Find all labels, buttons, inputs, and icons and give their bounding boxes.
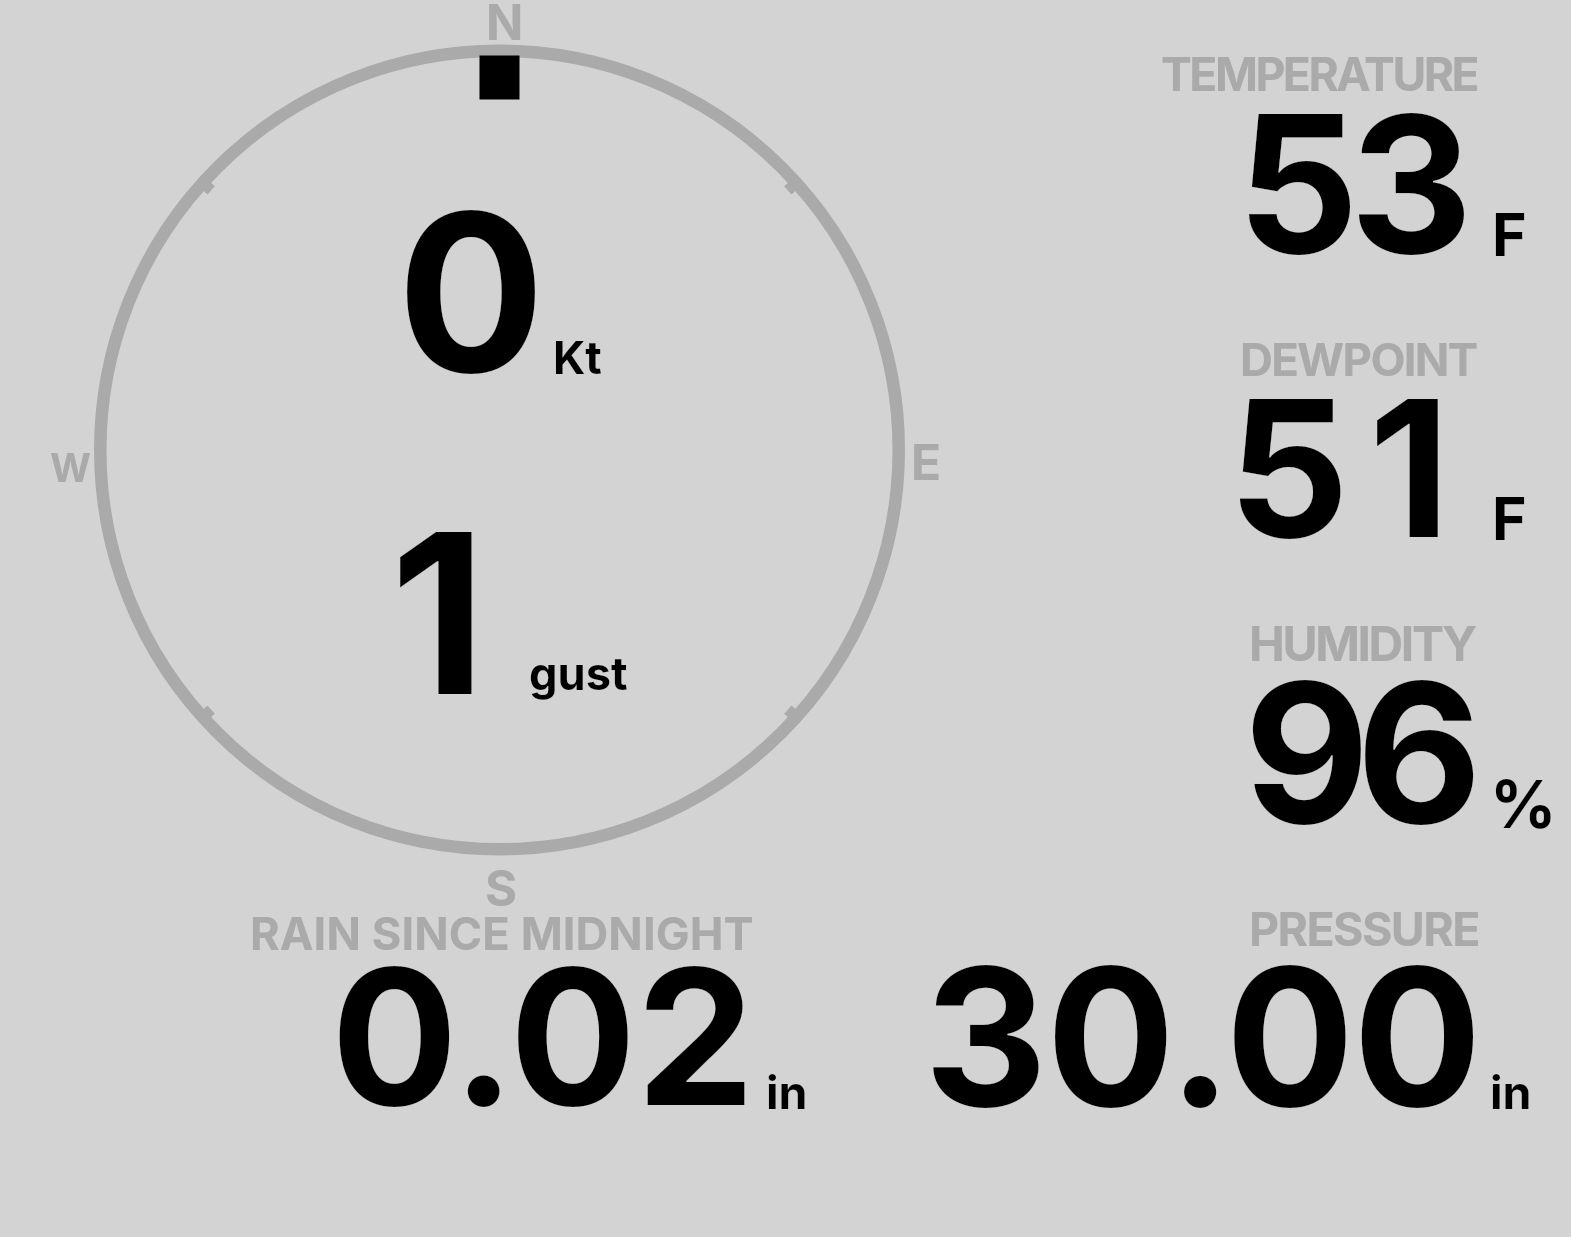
staticText: in [1490, 1064, 1532, 1120]
staticText: N [486, 0, 524, 52]
staticText: TEMPERATURE [1161, 46, 1478, 102]
staticText: 0.02 [331, 923, 755, 1150]
staticText: RAIN SINCE MIDNIGHT [250, 906, 754, 961]
staticText: F [1492, 483, 1527, 554]
staticText: DEWPOINT [1240, 332, 1477, 387]
button[interactable]: Wind, 0 knots, gusting 1, from north [94, 44, 906, 856]
staticText: in [766, 1064, 808, 1120]
staticText: E [911, 432, 942, 492]
button[interactable]: Rain since midnight 0.02 inches [240, 900, 820, 1130]
button[interactable]: Pressure 30.00 inches [900, 890, 1540, 1130]
staticText: Kt [553, 330, 602, 384]
staticText: HUMIDITY [1249, 614, 1475, 672]
staticText: PRESSURE [1249, 901, 1479, 957]
staticText: 30.00 [924, 921, 1481, 1152]
staticText: gust [529, 646, 628, 701]
button[interactable]: Humidity 96 percent [1100, 600, 1571, 870]
staticText: 1 [390, 478, 487, 748]
staticText: 0 [397, 159, 546, 425]
staticText: % [1490, 765, 1557, 844]
button[interactable]: Temperature 53 degrees Fahrenheit [1100, 40, 1571, 310]
staticText: S [485, 859, 518, 918]
button[interactable]: Dewpoint 51 degrees Fahrenheit [1100, 320, 1571, 590]
staticText: F [1492, 199, 1527, 270]
staticText: W [50, 444, 91, 492]
staticText: 96 [1244, 636, 1469, 870]
staticText: 53 [1237, 68, 1464, 298]
staticText: 51 [1228, 353, 1470, 582]
